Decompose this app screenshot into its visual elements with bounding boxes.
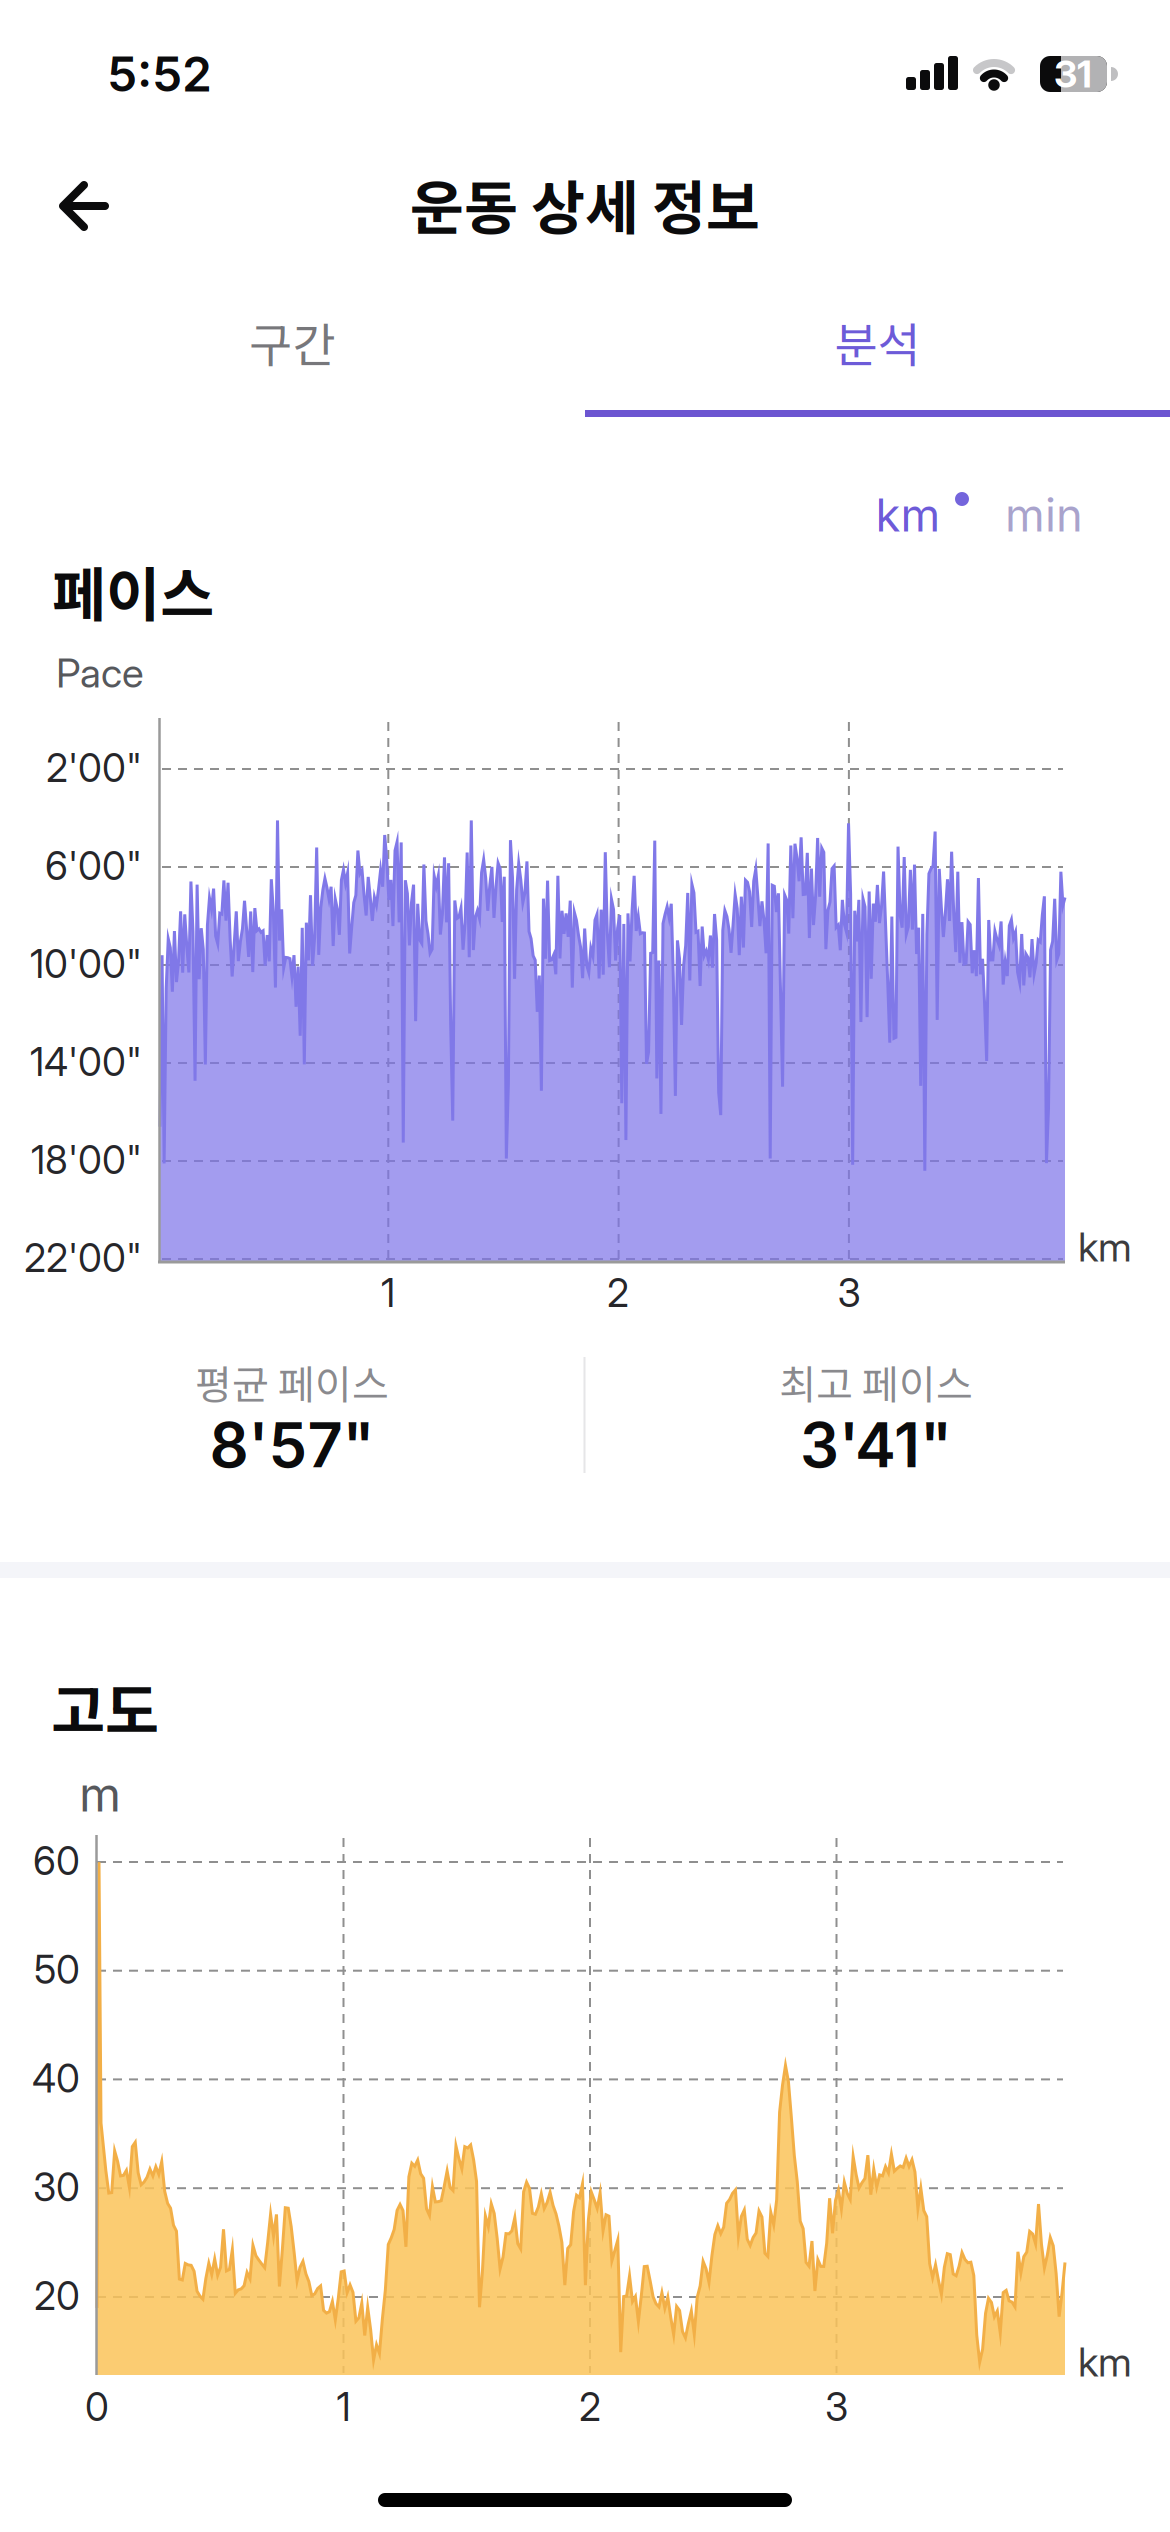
staticText: 40 bbox=[32, 2055, 80, 2102]
staticText: 14'00" bbox=[30, 1039, 142, 1085]
staticText: 2 bbox=[579, 2384, 601, 2430]
staticText: 5:52 bbox=[107, 45, 212, 103]
button[interactable]: Back bbox=[0, 0, 120, 120]
staticText: Pace bbox=[56, 649, 144, 697]
staticText: 3 bbox=[825, 2384, 848, 2430]
staticText: 30 bbox=[33, 2164, 80, 2211]
button[interactable]: 분석 bbox=[585, 287, 1170, 397]
staticText: 6'00" bbox=[45, 843, 142, 889]
staticText: km bbox=[1078, 1223, 1132, 1271]
staticText: km bbox=[875, 488, 940, 542]
staticText: 18'00" bbox=[31, 1137, 142, 1183]
staticText: 0 bbox=[85, 2384, 109, 2430]
staticText: 31 bbox=[1054, 51, 1092, 97]
staticText: 운동 상세 정보 bbox=[410, 161, 760, 246]
staticText: 2 bbox=[607, 1270, 629, 1316]
staticText: 평균 페이스 bbox=[195, 1353, 389, 1411]
staticText: 최고 페이스 bbox=[779, 1353, 973, 1411]
staticText: 구간 bbox=[249, 308, 335, 376]
button[interactable]: 구간 bbox=[0, 287, 585, 397]
staticText: 3'41" bbox=[800, 1408, 952, 1482]
staticText: 1 bbox=[381, 1270, 395, 1316]
staticText: km bbox=[1078, 2338, 1132, 2386]
staticText: 50 bbox=[34, 1946, 80, 1993]
staticText: 60 bbox=[33, 1838, 80, 1884]
staticText: 1 bbox=[336, 2384, 350, 2430]
staticText: 페이스 bbox=[52, 548, 214, 633]
staticText: 10'00" bbox=[30, 941, 142, 987]
staticText: 22'00" bbox=[24, 1235, 142, 1281]
staticText: 3 bbox=[837, 1270, 860, 1316]
staticText: 고도 bbox=[51, 1664, 159, 1749]
button[interactable]: min bbox=[979, 475, 1109, 555]
staticText: m bbox=[79, 1765, 121, 1823]
button[interactable]: km bbox=[848, 475, 968, 555]
staticText: 분석 bbox=[834, 308, 920, 376]
staticText: min bbox=[1005, 488, 1083, 542]
staticText: 20 bbox=[34, 2273, 80, 2319]
staticText: 8'57" bbox=[209, 1408, 374, 1482]
staticText: 2'00" bbox=[46, 745, 142, 791]
